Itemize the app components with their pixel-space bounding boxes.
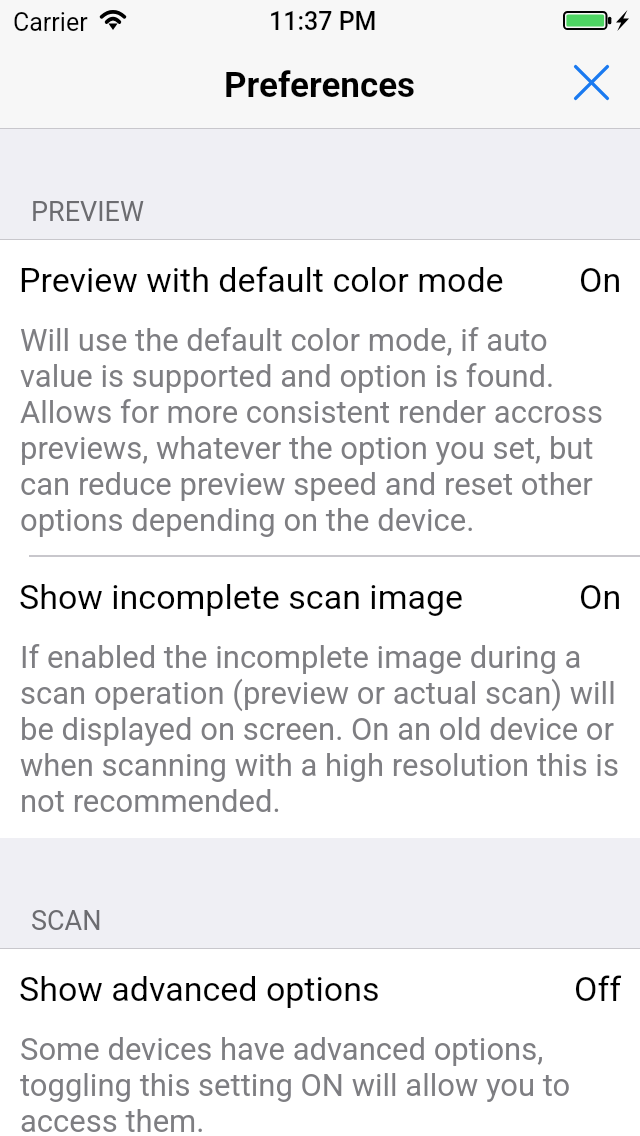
staticText: Carrier xyxy=(13,8,88,37)
staticText: Preview with default color mode xyxy=(19,260,504,300)
button[interactable]: Close xyxy=(552,41,640,129)
button[interactable]: Preview with default color mode xyxy=(0,240,640,557)
staticText: Show advanced options xyxy=(19,969,380,1009)
staticText: On xyxy=(579,577,622,617)
staticText: On xyxy=(579,260,622,300)
staticText: Will use the default color mode, if auto… xyxy=(20,322,623,538)
staticText: Preferences xyxy=(224,65,416,106)
staticText: If enabled the incomplete image during a… xyxy=(20,639,623,819)
staticText: PREVIEW xyxy=(31,196,144,228)
button[interactable]: Show advanced options xyxy=(0,949,640,1136)
staticText: 11:37 PM xyxy=(269,7,377,36)
staticText: Some devices have advanced options, togg… xyxy=(20,1031,623,1136)
staticText: Off xyxy=(574,969,622,1009)
button[interactable]: Show incomplete scan image xyxy=(0,557,640,838)
staticText: SCAN xyxy=(31,905,102,937)
staticText: Show incomplete scan image xyxy=(19,577,464,617)
